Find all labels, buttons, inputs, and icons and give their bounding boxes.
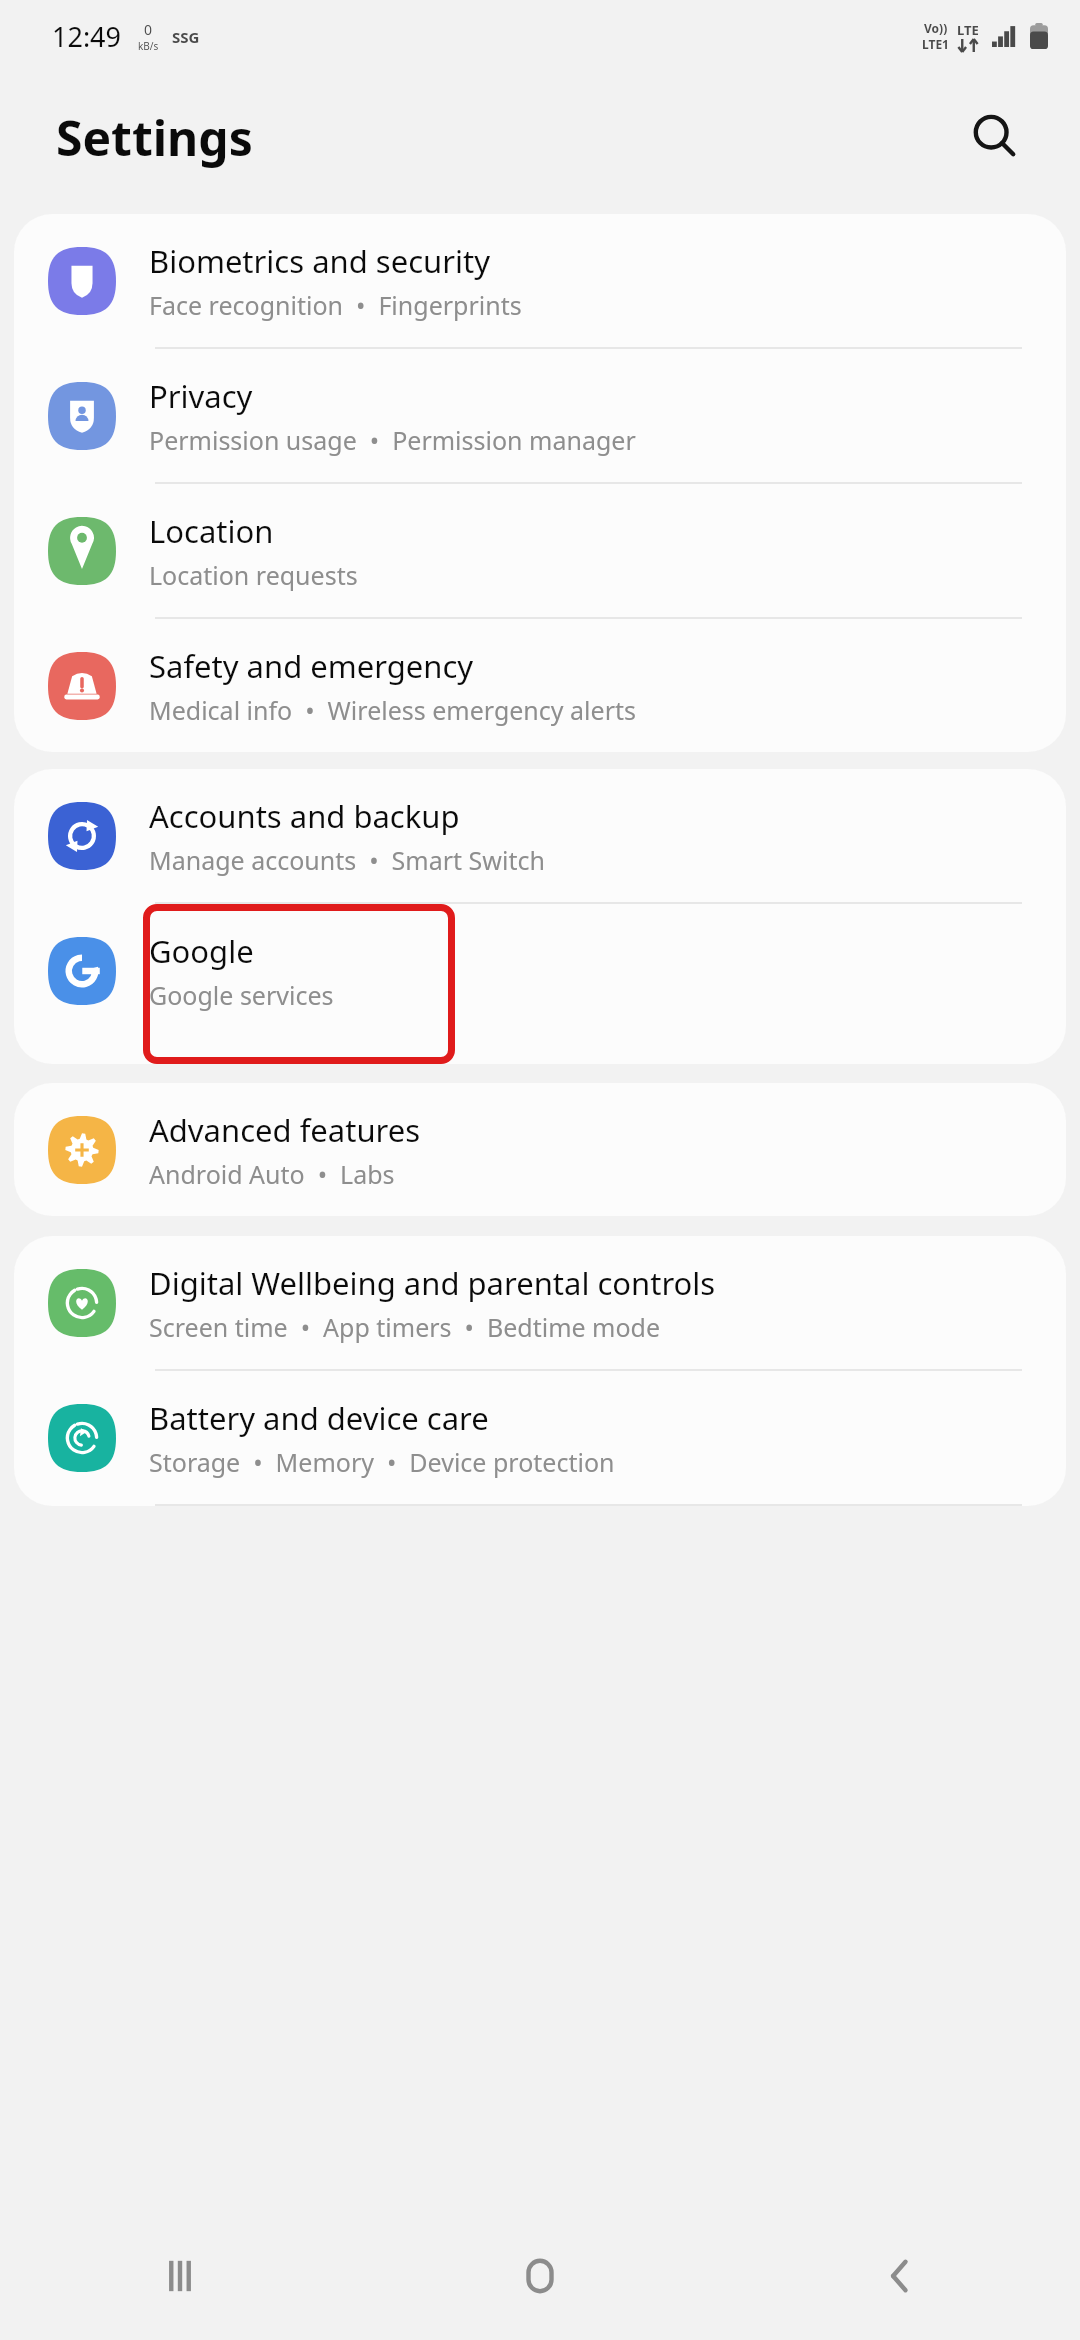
staticText: LTE: [957, 21, 979, 39]
button[interactable]: Home: [360, 2212, 720, 2340]
button[interactable]: Safety and emergency: [14, 619, 1066, 752]
staticText: LTE1: [922, 36, 949, 52]
staticText: Medical info • Wireless emergency alerts: [149, 693, 636, 727]
staticText: Battery and device care: [149, 1397, 489, 1439]
staticText: Storage • Memory • Device protection: [149, 1445, 615, 1479]
staticText: Privacy: [149, 375, 253, 417]
staticText: Face recognition • Fingerprints: [149, 288, 522, 322]
staticText: Screen time • App timers • Bedtime mode: [149, 1310, 661, 1344]
staticText: Biometrics and security: [149, 240, 490, 282]
staticText: 12:49: [52, 18, 122, 55]
button[interactable]: Google: [14, 904, 1066, 1064]
staticText: Google services: [149, 978, 334, 1012]
button[interactable]: Battery and device care: [14, 1371, 1066, 1504]
staticText: Location: [149, 510, 274, 552]
button[interactable]: Advanced features: [14, 1083, 1066, 1216]
staticText: Manage accounts • Smart Switch: [149, 843, 545, 877]
staticText: 0: [144, 20, 153, 39]
staticText: Vo)): [924, 20, 948, 36]
button[interactable]: Privacy: [14, 349, 1066, 482]
button[interactable]: Digital Wellbeing and parental controls: [14, 1236, 1066, 1369]
staticText: kB/s: [138, 39, 159, 53]
staticText: Safety and emergency: [149, 645, 474, 687]
button[interactable]: Biometrics and security: [14, 214, 1066, 347]
staticText: Advanced features: [149, 1109, 421, 1151]
button[interactable]: Search: [948, 90, 1042, 184]
button[interactable]: Recents: [0, 2212, 360, 2340]
button[interactable]: Location: [14, 484, 1066, 617]
staticText: Location requests: [149, 558, 358, 592]
staticText: Accounts and backup: [149, 795, 460, 837]
staticText: Google: [149, 930, 254, 972]
staticText: Settings: [56, 105, 253, 170]
staticText: Digital Wellbeing and parental controls: [149, 1262, 716, 1304]
staticText: SSG: [172, 27, 200, 47]
staticText: Android Auto • Labs: [149, 1157, 395, 1191]
button[interactable]: Back: [720, 2212, 1080, 2340]
staticText: Permission usage • Permission manager: [149, 423, 636, 457]
button[interactable]: Accounts and backup: [14, 769, 1066, 902]
